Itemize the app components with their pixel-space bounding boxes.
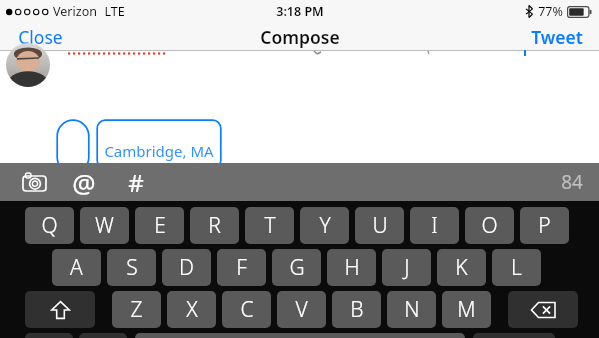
button[interactable]: Mention someone	[62, 163, 106, 201]
staticText: LTE	[104, 3, 125, 20]
staticText: I	[431, 211, 438, 240]
staticText: M	[457, 295, 476, 324]
button[interactable]: O	[465, 207, 514, 244]
staticText: P	[538, 211, 551, 240]
button[interactable]: N	[387, 291, 436, 328]
button[interactable]: T	[245, 207, 294, 244]
button[interactable]: C	[222, 291, 271, 328]
staticText: 3:18 PM	[276, 3, 324, 20]
button[interactable]: F	[217, 249, 266, 286]
button[interactable]: Z	[112, 291, 161, 328]
staticText: Verizon	[53, 3, 97, 20]
staticText: Q	[41, 211, 58, 240]
staticText: S	[126, 253, 138, 282]
staticText: K	[455, 253, 468, 282]
staticText: V	[295, 295, 308, 324]
staticText: G	[289, 253, 305, 282]
staticText: O	[481, 211, 498, 240]
staticText: W	[95, 211, 114, 240]
button[interactable]: D	[162, 249, 211, 286]
button[interactable]: Tweet	[517, 22, 599, 51]
staticText: U	[372, 211, 388, 240]
button[interactable]: G	[272, 249, 321, 286]
staticText: Tweet	[531, 25, 583, 48]
staticText: A	[70, 253, 83, 282]
staticText: C	[240, 295, 254, 324]
button[interactable]: R	[190, 207, 239, 244]
staticText: Close	[18, 25, 63, 48]
button[interactable]: 123	[25, 333, 73, 338]
button[interactable]: W	[80, 207, 129, 244]
staticText: @	[72, 165, 96, 200]
staticText: Z	[130, 295, 143, 324]
button[interactable]: E	[135, 207, 184, 244]
button[interactable]: M	[442, 291, 491, 328]
button[interactable]: Shift	[25, 291, 95, 328]
button[interactable]: P	[520, 207, 569, 244]
staticText: T	[264, 211, 276, 240]
staticText: D	[179, 253, 194, 282]
button[interactable]: V	[277, 291, 326, 328]
staticText: B	[350, 295, 364, 324]
button[interactable]: Cambridge, MA	[96, 119, 222, 163]
staticText: N	[404, 295, 420, 324]
staticText: #	[128, 166, 144, 199]
staticText: F	[236, 253, 247, 282]
staticText: E	[154, 211, 166, 240]
button[interactable]: return	[473, 333, 555, 338]
button[interactable]: K	[437, 249, 486, 286]
button[interactable]: Backspace	[508, 291, 578, 328]
staticText: X	[186, 295, 198, 324]
button[interactable]: H	[327, 249, 376, 286]
button[interactable]: S	[107, 249, 156, 286]
button[interactable]: B	[332, 291, 381, 328]
button[interactable]: Add photo	[12, 163, 56, 201]
staticText: J	[404, 253, 410, 282]
staticText: Y	[319, 211, 331, 240]
staticText: R	[208, 211, 221, 240]
button[interactable]: Dictate	[79, 333, 127, 338]
button[interactable]: Add hashtag	[114, 163, 158, 201]
staticText: H	[344, 253, 360, 282]
button[interactable]: Q	[25, 207, 74, 244]
button[interactable]: Close	[0, 22, 77, 51]
button[interactable]: X	[167, 291, 216, 328]
button[interactable]: U	[355, 207, 404, 244]
button[interactable]: J	[382, 249, 431, 286]
staticText: L	[511, 253, 522, 282]
staticText: 84	[561, 169, 583, 195]
button[interactable]: A	[52, 249, 101, 286]
staticText: Compose	[260, 25, 340, 49]
button[interactable]: Y	[300, 207, 349, 244]
staticText: Cambridge, MA	[104, 141, 214, 161]
button[interactable]: L	[492, 249, 541, 286]
button[interactable]: I	[410, 207, 459, 244]
button[interactable]: space	[135, 333, 465, 338]
staticText: 77%	[538, 3, 563, 20]
